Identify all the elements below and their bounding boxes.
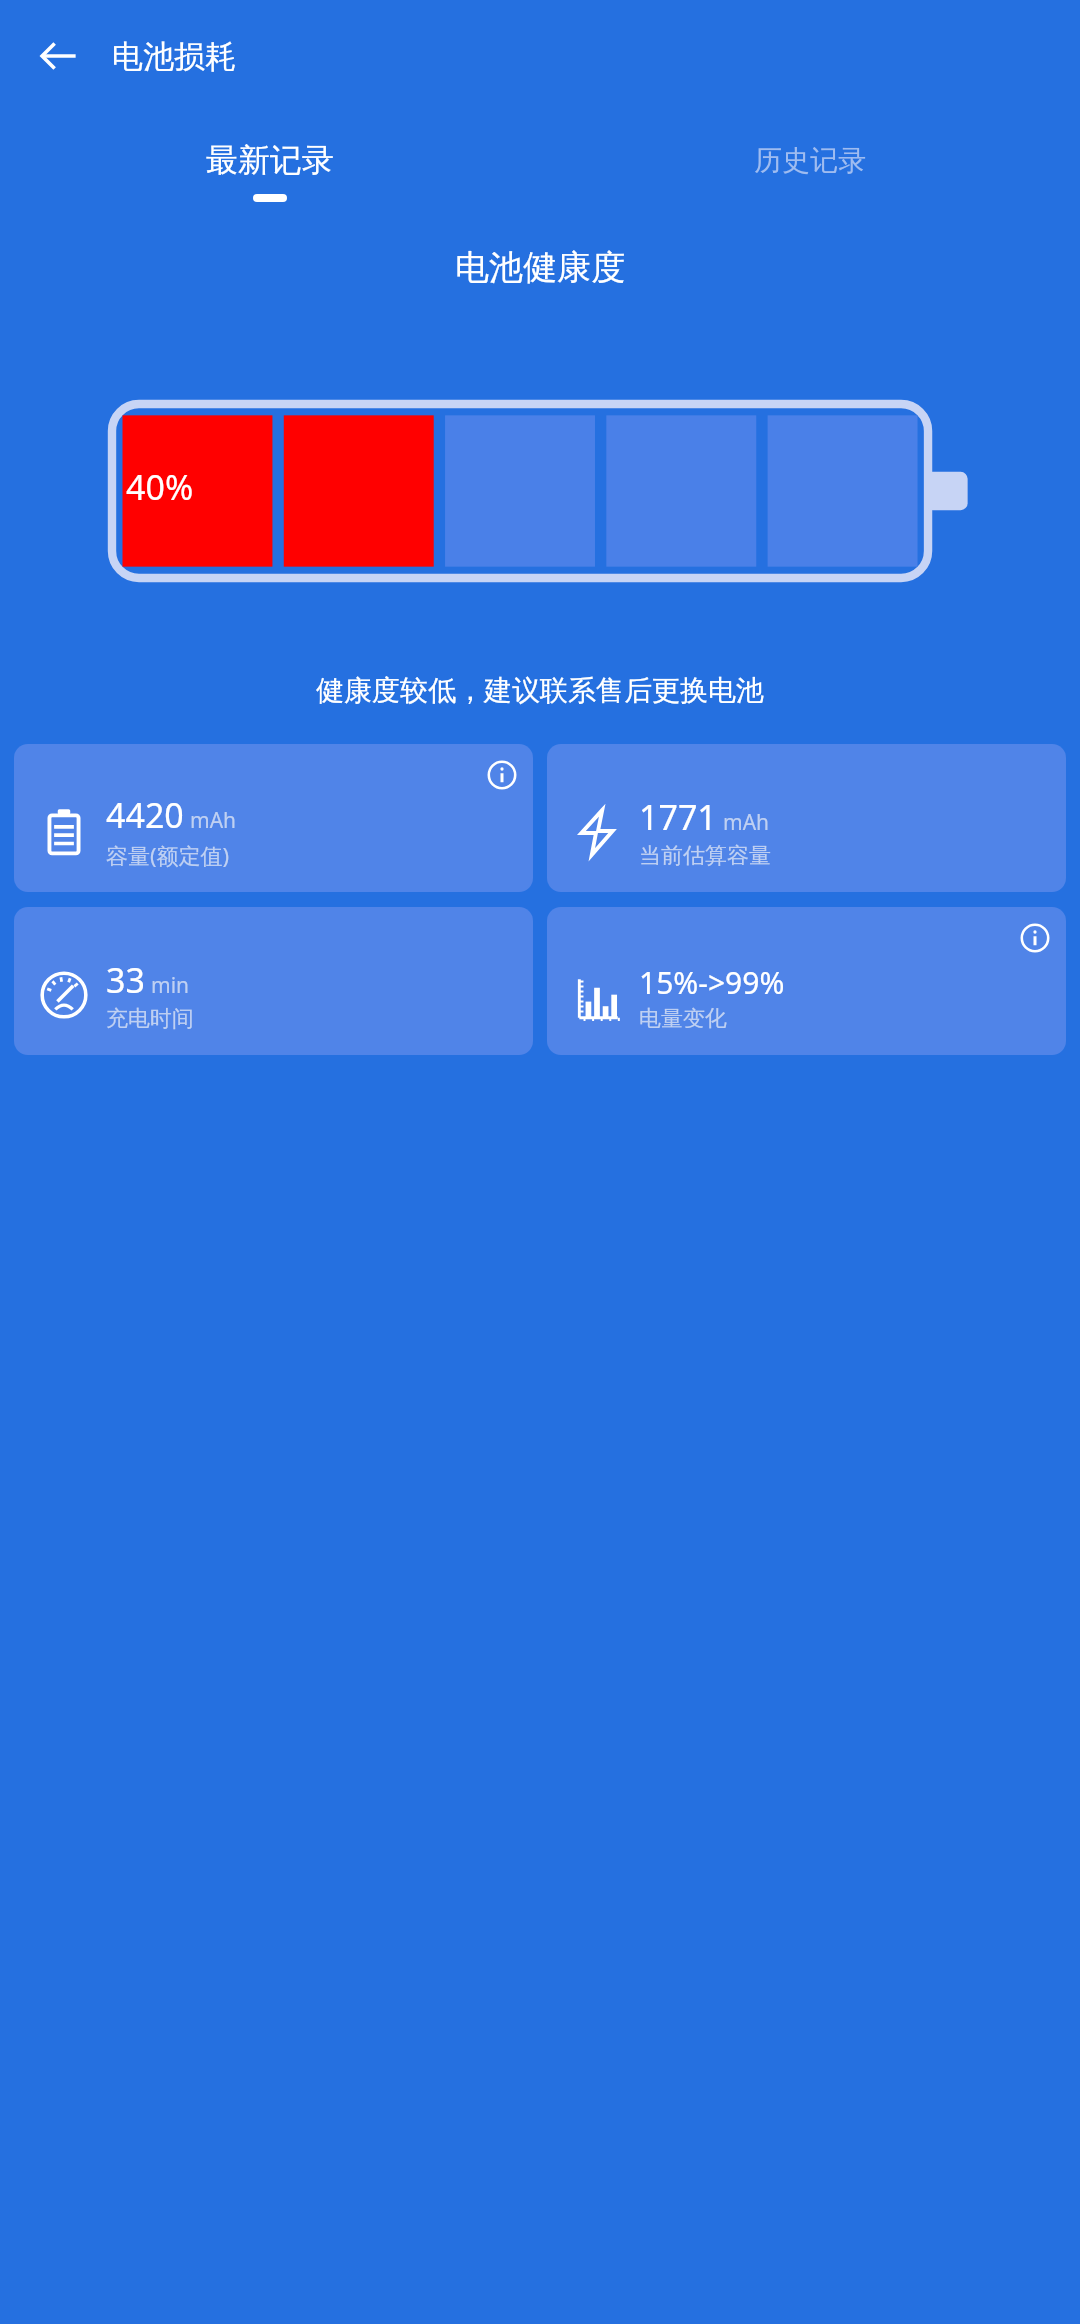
staticText: 当前估算容量 xyxy=(639,842,771,870)
button[interactable]: 33 xyxy=(14,907,533,1055)
button[interactable]: 1771 xyxy=(547,744,1066,892)
staticText: 电池健康度 xyxy=(455,246,625,289)
staticText: 电量变化 xyxy=(639,1005,727,1033)
button[interactable]: Info xyxy=(14,744,533,892)
staticText: min xyxy=(151,971,190,1000)
staticText: 历史记录 xyxy=(754,143,866,178)
staticText: 40% xyxy=(126,464,194,510)
staticText: 1771 xyxy=(639,794,717,840)
button[interactable]: Back xyxy=(22,20,94,92)
staticText: mAh xyxy=(190,806,237,835)
button[interactable]: Info xyxy=(1018,921,1052,955)
staticText: 电池损耗 xyxy=(112,37,236,76)
staticText: 最新记录 xyxy=(206,140,334,180)
staticText: 健康度较低，建议联系售后更换电池 xyxy=(316,673,764,708)
staticText: 4420 xyxy=(106,792,184,838)
button[interactable]: Info xyxy=(547,907,1066,1055)
staticText: 容量(额定值) xyxy=(106,840,230,870)
staticText: 15%->99% xyxy=(639,962,785,1003)
button[interactable]: Info xyxy=(485,758,519,792)
staticText: 33 xyxy=(106,957,145,1003)
button[interactable]: 最新记录 xyxy=(0,112,540,230)
staticText: 充电时间 xyxy=(106,1005,194,1033)
button[interactable]: 历史记录 xyxy=(540,112,1080,230)
staticText: mAh xyxy=(723,808,770,837)
